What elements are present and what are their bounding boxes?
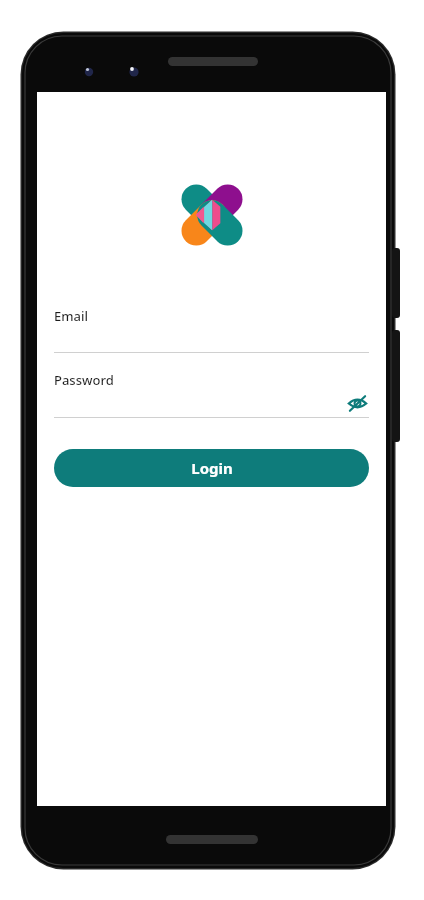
staticText: Email (54, 307, 89, 325)
staticText: Login (191, 458, 233, 478)
button[interactable]: Login (54, 449, 369, 487)
button[interactable]: Show password (341, 387, 373, 419)
staticText: Password (54, 371, 114, 389)
